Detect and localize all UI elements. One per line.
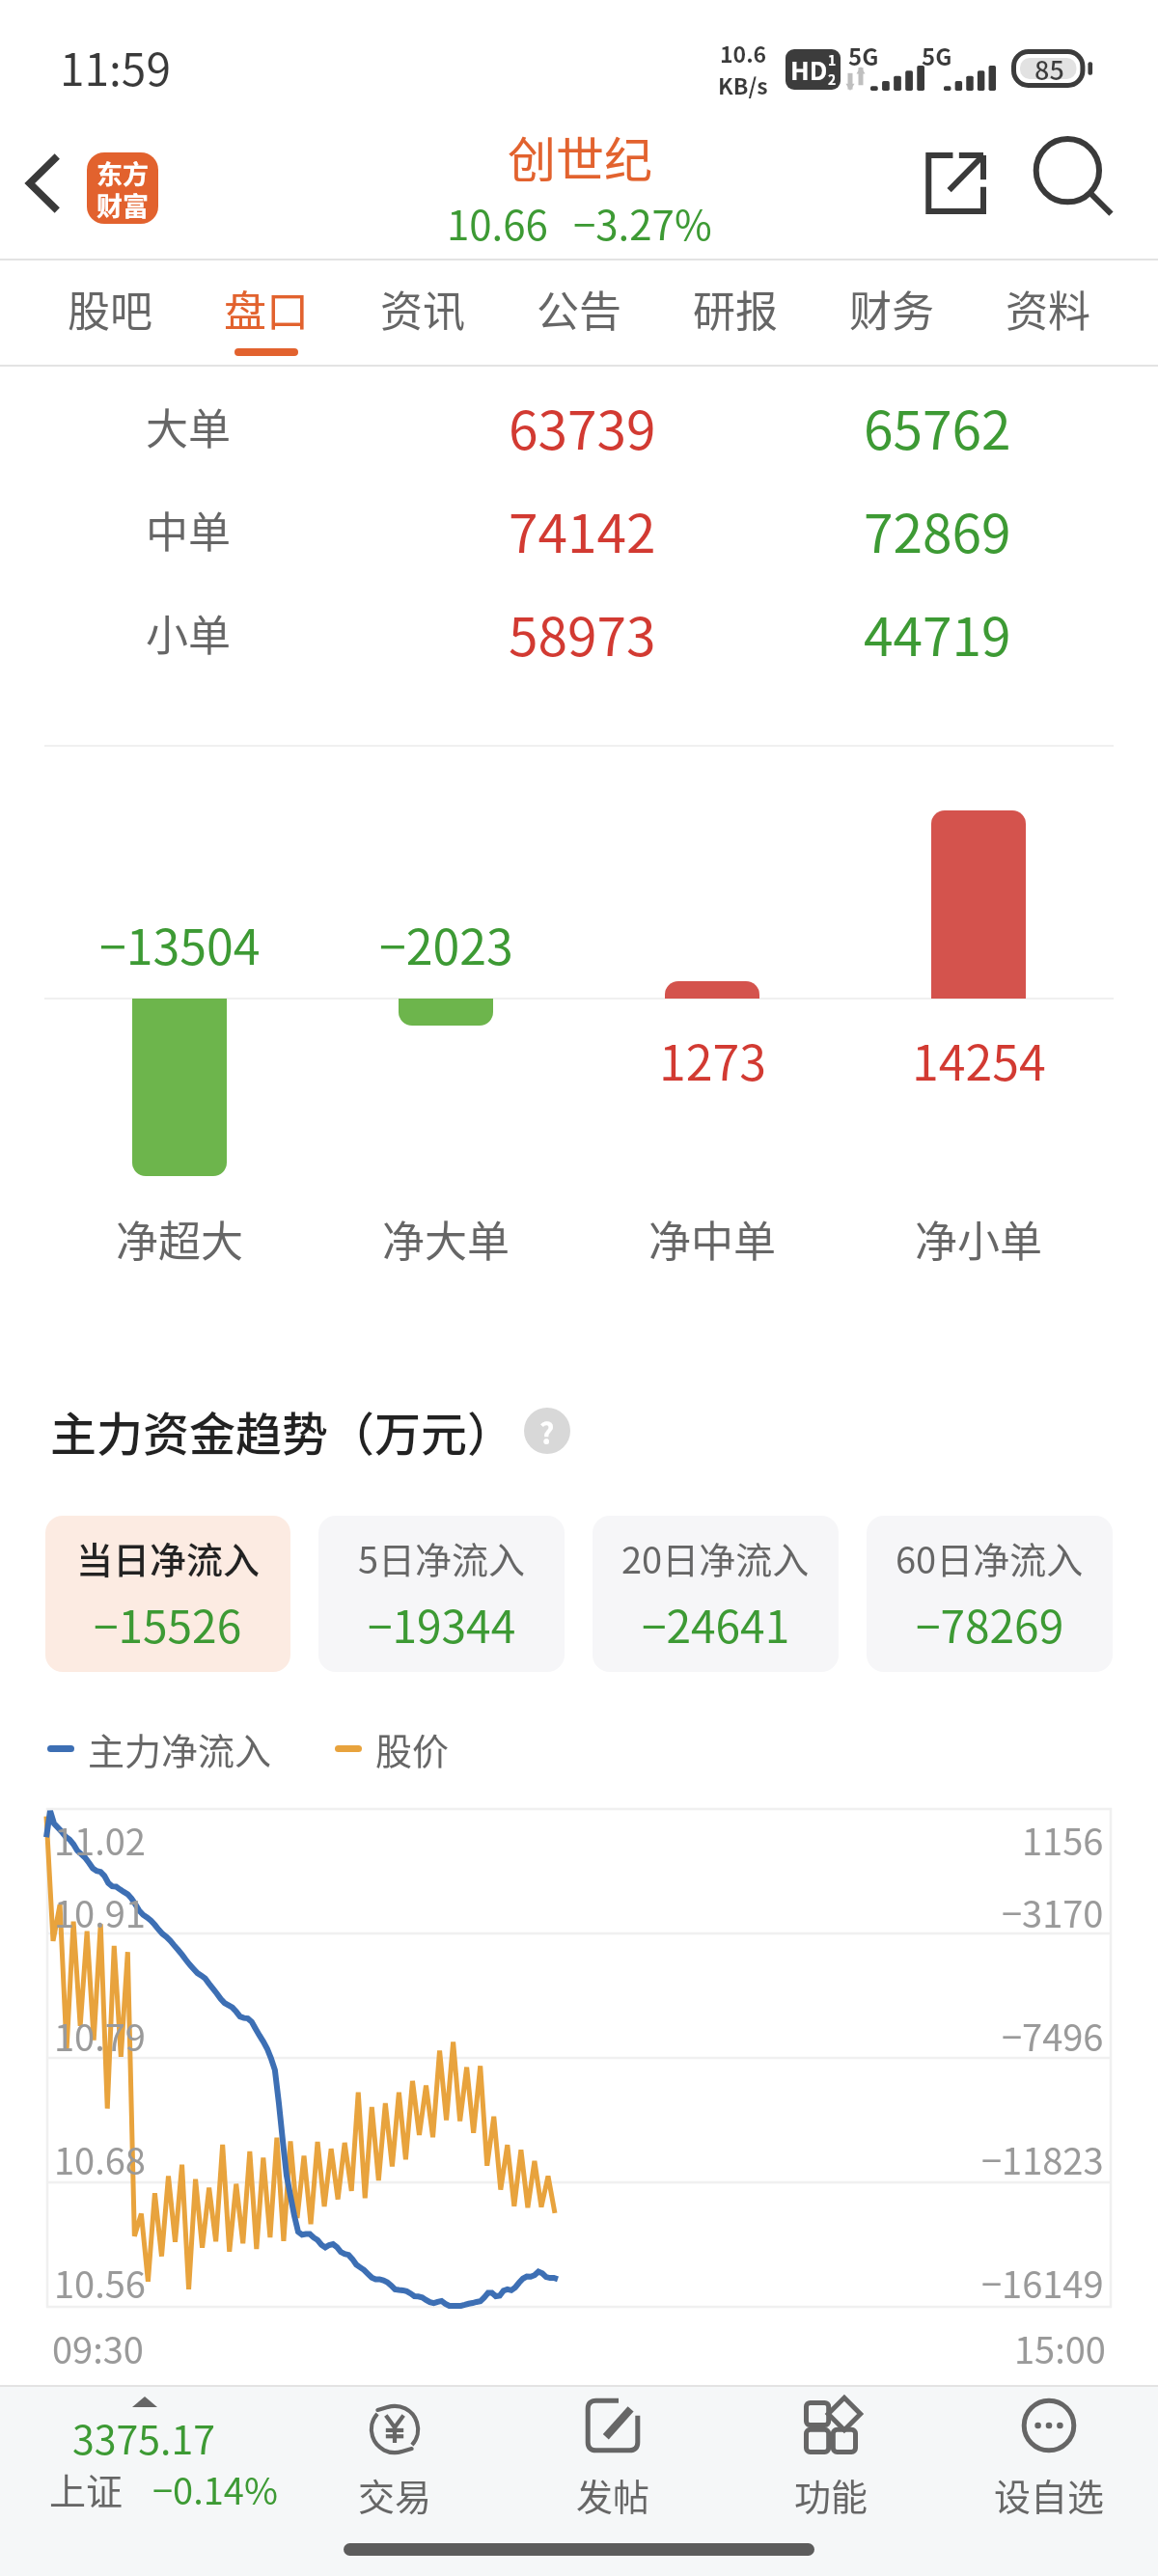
button[interactable]: 公告 <box>501 260 657 367</box>
staticText: 09:30 <box>52 2321 144 2374</box>
staticText: 3375.17 <box>72 2408 215 2465</box>
button[interactable]: 功能 <box>722 2387 940 2522</box>
staticText: 财务 <box>849 278 934 340</box>
staticText: 1 <box>828 50 837 69</box>
staticText: 交易 <box>358 2468 432 2521</box>
staticText: 研报 <box>693 278 778 340</box>
staticText: 74142 <box>509 491 656 568</box>
button[interactable]: Search <box>1025 125 1141 241</box>
staticText: 58973 <box>509 594 656 671</box>
staticText: 15:00 <box>1014 2321 1106 2374</box>
staticText: 中单 <box>146 499 231 561</box>
staticText: −11823 <box>981 2132 1104 2185</box>
staticText: 60日净流入 <box>896 1531 1084 1584</box>
staticText: 东方 财富 <box>96 154 149 223</box>
button[interactable]: 发帖 <box>504 2387 722 2522</box>
staticText: 20日净流入 <box>621 1531 810 1584</box>
staticText: 44719 <box>864 594 1011 671</box>
staticText: 2 <box>828 69 837 89</box>
staticText: 主力净流入 <box>88 1722 272 1775</box>
button[interactable]: 交易 <box>286 2387 504 2522</box>
staticText: −15526 <box>94 1592 242 1657</box>
staticText: 85 <box>1034 50 1064 88</box>
staticText: 创世纪 <box>508 122 652 191</box>
staticText: 65762 <box>864 388 1011 465</box>
staticText: 发帖 <box>576 2468 650 2521</box>
staticText: −7496 <box>1002 2009 1104 2062</box>
button[interactable]: 5日净流入 <box>318 1516 565 1672</box>
button[interactable]: East Money home <box>87 152 158 224</box>
staticText: 10.66 <box>447 193 548 252</box>
staticText: 5G <box>922 39 952 72</box>
staticText: KB/s <box>718 69 768 100</box>
button[interactable]: 3375.17 <box>0 2387 286 2522</box>
staticText: 5日净流入 <box>358 1531 526 1584</box>
button[interactable]: 设自选 <box>940 2387 1158 2522</box>
staticText: −19344 <box>368 1592 516 1657</box>
button[interactable]: 研报 <box>657 260 813 367</box>
staticText: 当日净流入 <box>76 1531 261 1584</box>
staticText: 10.68 <box>54 2132 146 2185</box>
staticText: 股价 <box>375 1722 450 1775</box>
staticText: −3170 <box>1002 1885 1104 1938</box>
button[interactable]: 60日净流入 <box>867 1516 1113 1672</box>
button[interactable]: 20日净流入 <box>593 1516 839 1672</box>
staticText: 上证 <box>49 2462 124 2515</box>
button[interactable]: 股吧 <box>32 260 188 367</box>
staticText: 净超大 <box>116 1208 243 1270</box>
button[interactable]: Help <box>524 1408 570 1454</box>
staticText: −78269 <box>916 1592 1064 1657</box>
staticText: 72869 <box>864 491 1011 568</box>
staticText: 1273 <box>659 1025 766 1094</box>
staticText: −2023 <box>379 909 513 978</box>
staticText: −0.14% <box>152 2462 278 2515</box>
staticText: 资讯 <box>380 278 465 340</box>
button[interactable]: Share <box>897 125 1013 241</box>
staticText: 净小单 <box>915 1208 1042 1270</box>
staticText: 盘口 <box>224 278 309 340</box>
staticText: 10.79 <box>54 2009 146 2062</box>
button[interactable]: 财务 <box>813 260 970 367</box>
button[interactable]: 资讯 <box>345 260 501 367</box>
staticText: 11.02 <box>54 1813 146 1866</box>
button[interactable]: 当日净流入 <box>45 1516 290 1672</box>
button[interactable]: 盘口 <box>188 260 345 367</box>
button[interactable]: 资料 <box>970 260 1126 367</box>
staticText: 11:59 <box>60 35 171 99</box>
staticText: −24641 <box>642 1592 790 1657</box>
staticText: HD <box>790 51 828 88</box>
staticText: 股吧 <box>68 278 152 340</box>
staticText: 10.91 <box>54 1885 146 1938</box>
staticText: −3.27% <box>573 193 712 252</box>
staticText: 小单 <box>146 602 231 664</box>
staticText: 净中单 <box>648 1208 776 1270</box>
staticText: 主力资金趋势（万元） <box>50 1397 514 1465</box>
staticText: 10.6 <box>720 37 767 69</box>
staticText: −16149 <box>981 2256 1104 2309</box>
staticText: 净大单 <box>382 1208 510 1270</box>
staticText: 大单 <box>146 396 231 457</box>
staticText: 公告 <box>537 278 621 340</box>
staticText: −13504 <box>99 909 261 978</box>
staticText: 1156 <box>1022 1813 1104 1866</box>
staticText: 5G <box>848 39 879 72</box>
staticText: 资料 <box>1006 278 1090 340</box>
button[interactable]: Back <box>0 106 87 260</box>
staticText: ? <box>539 1411 555 1452</box>
staticText: 设自选 <box>994 2468 1105 2521</box>
staticText: 10.56 <box>54 2256 146 2309</box>
staticText: 14254 <box>912 1025 1046 1094</box>
staticText: 功能 <box>794 2468 868 2521</box>
staticText: 63739 <box>509 388 656 465</box>
